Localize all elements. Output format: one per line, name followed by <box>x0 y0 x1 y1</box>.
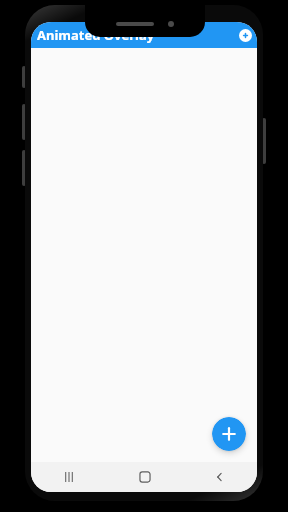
button[interactable]: Back <box>182 462 257 492</box>
button[interactable]: Home <box>107 462 182 492</box>
staticText: Animated Overlay <box>37 26 155 44</box>
button[interactable]: Recent apps <box>31 462 107 492</box>
button[interactable]: Add <box>212 417 246 451</box>
button[interactable]: Add <box>235 25 255 45</box>
